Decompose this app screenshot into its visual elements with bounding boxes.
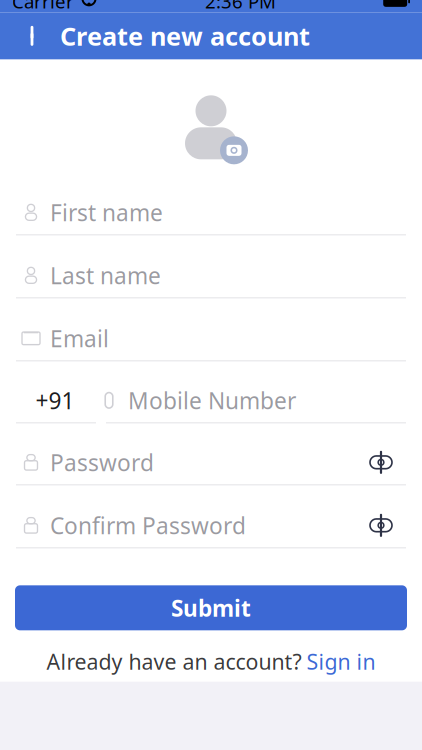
button[interactable]: Back bbox=[12, 14, 56, 58]
button[interactable]: Show password bbox=[362, 445, 400, 479]
staticText: Confirm Password bbox=[50, 510, 246, 540]
staticText: +91 bbox=[35, 385, 74, 415]
staticText: Mobile Number bbox=[128, 385, 296, 415]
button[interactable]: Create new account bbox=[56, 11, 310, 61]
staticText: First name bbox=[50, 197, 163, 227]
staticText: Password bbox=[50, 447, 154, 477]
staticText: Submit bbox=[171, 593, 251, 623]
staticText: Email bbox=[50, 323, 109, 353]
button[interactable]: Submit bbox=[15, 585, 407, 630]
staticText: Create new account bbox=[60, 19, 310, 53]
staticText: 2:36 PM bbox=[205, 0, 276, 14]
staticText: Sign in bbox=[306, 647, 375, 676]
button[interactable]: Show confirm password bbox=[362, 508, 400, 542]
staticText: Carrier bbox=[12, 0, 74, 14]
staticText: Last name bbox=[50, 260, 161, 290]
button[interactable]: Already have an account? bbox=[34, 641, 387, 682]
button[interactable]: +91 bbox=[16, 378, 94, 422]
staticText: Already have an account? bbox=[46, 647, 301, 676]
